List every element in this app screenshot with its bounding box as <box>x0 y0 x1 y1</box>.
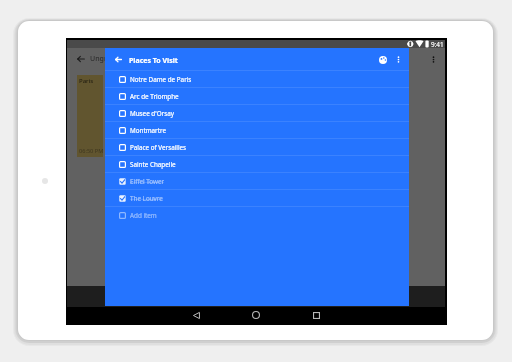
button[interactable]: More options <box>391 52 405 66</box>
button[interactable]: Musee d'Orsay <box>105 104 409 121</box>
button[interactable]: Sainte Chapelle <box>105 155 409 172</box>
button[interactable]: Notre Dame de Paris <box>105 70 409 87</box>
staticText: Places To Visit <box>129 56 178 66</box>
staticText: Palace of Versailles <box>130 143 187 152</box>
button[interactable]: Back <box>112 53 125 66</box>
button[interactable]: Eiffel Tower <box>105 172 409 189</box>
button[interactable]: Arc de Triomphe <box>105 87 409 104</box>
staticText: Notre Dame de Paris <box>130 75 192 84</box>
staticText: Sainte Chapelle <box>130 160 176 169</box>
button[interactable]: Palace of Versailles <box>105 138 409 155</box>
staticText: The Louvre <box>130 194 163 203</box>
staticText: 9:41 <box>431 40 444 48</box>
staticText: Musee d'Orsay <box>130 109 174 118</box>
button[interactable]: More options <box>425 51 441 67</box>
button[interactable]: Montmartre <box>105 121 409 138</box>
staticText: Ungrouped <box>90 54 129 64</box>
button[interactable]: The Louvre <box>105 189 409 206</box>
button[interactable]: Add item <box>105 206 409 223</box>
staticText: Paris <box>79 77 94 85</box>
staticText: Arc de Triomphe <box>130 92 179 101</box>
button[interactable]: Back <box>75 53 87 65</box>
button[interactable]: Back <box>187 307 205 325</box>
staticText: Montmartre <box>130 126 167 135</box>
staticText: 06:50 PM <box>79 147 104 155</box>
button[interactable]: Recents <box>307 307 325 325</box>
staticText: Eiffel Tower <box>130 177 165 186</box>
button[interactable]: Home <box>247 307 265 325</box>
button[interactable]: Change color <box>375 52 390 67</box>
staticText: Add item <box>130 211 157 220</box>
